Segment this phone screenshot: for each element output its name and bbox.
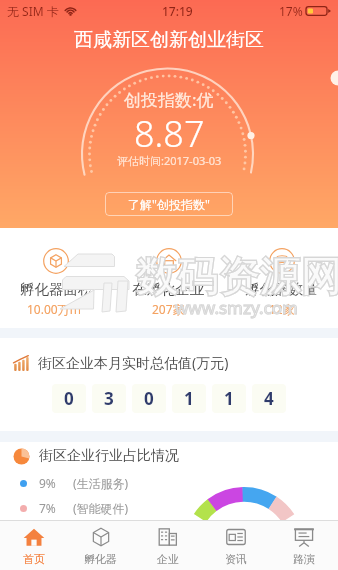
staticText: 无 SIM 卡 — [7, 3, 59, 19]
button[interactable]: 路演 — [270, 521, 338, 570]
button[interactable]: 孵化器数量 — [225, 228, 338, 328]
staticText: 1 — [184, 387, 194, 410]
button[interactable]: 在孵化企业 — [112, 228, 225, 328]
staticText: 西咸新区创新创业街区 — [74, 28, 264, 52]
staticText: 了解"创投指数" — [128, 196, 210, 212]
staticText: 9% — [39, 475, 56, 491]
staticText: 207家 — [152, 301, 185, 317]
staticText: 企业 — [157, 552, 179, 566]
staticText: 评估时间:2017-03-03 — [117, 153, 222, 168]
staticText: 街区企业行业占比情况 — [39, 447, 179, 465]
button[interactable]: 孵化器 — [67, 521, 134, 570]
button[interactable]: 孵化器面积 — [0, 228, 112, 328]
staticText: 数码资源网 — [136, 252, 338, 304]
staticText: 首页 — [23, 552, 45, 566]
staticText: 10.00万m² — [27, 301, 86, 317]
staticText: 17:19 — [162, 3, 193, 19]
button[interactable]: 企业 — [134, 521, 202, 570]
staticText: 12家 — [269, 301, 295, 317]
staticText: 7% — [39, 500, 56, 516]
staticText: 街区企业本月实时总估值(万元) — [38, 353, 229, 372]
staticText: 孵化器面积 — [20, 280, 93, 298]
staticText: 资讯 — [225, 552, 247, 566]
staticText: www.smzy.com — [175, 296, 298, 319]
staticText: 17% — [279, 3, 303, 19]
staticText: 创投指数:优 — [124, 88, 214, 111]
staticText: 4 — [264, 387, 274, 410]
button[interactable]: 了解"创投指数" — [105, 192, 233, 216]
staticText: 3 — [104, 387, 114, 410]
staticText: 路演 — [293, 552, 315, 566]
staticText: 孵化器 — [84, 552, 117, 566]
staticText: (智能硬件) — [73, 500, 129, 516]
staticText: 0 — [64, 387, 74, 410]
staticText: www.smzy.com — [175, 296, 298, 319]
staticText: 0 — [144, 387, 154, 410]
staticText: (生活服务) — [73, 475, 129, 491]
button[interactable]: 首页 — [0, 521, 67, 570]
staticText: 8.87 — [134, 109, 205, 158]
staticText: 在孵化企业 — [132, 280, 205, 298]
button[interactable]: 资讯 — [202, 521, 270, 570]
staticText: 数码资源网 — [136, 252, 338, 304]
staticText: 孵化器数量 — [245, 280, 318, 298]
staticText: 1 — [224, 387, 234, 410]
